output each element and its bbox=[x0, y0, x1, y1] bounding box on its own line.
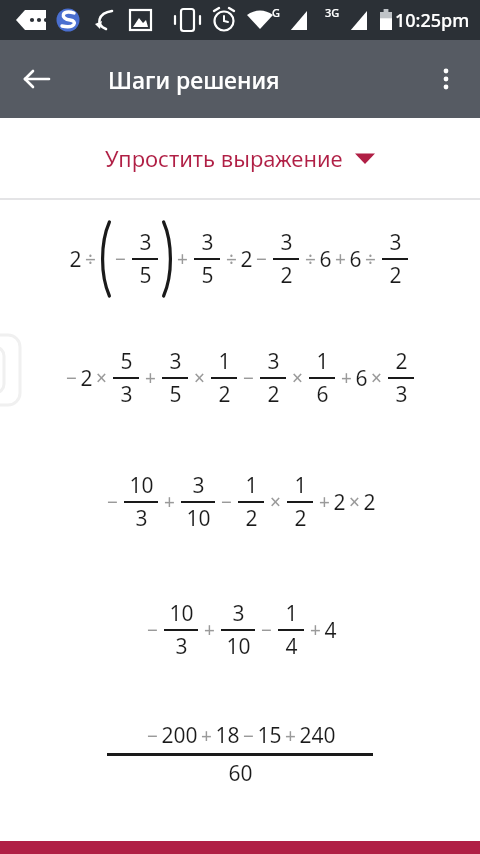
staticText: 3 bbox=[139, 228, 152, 257]
button[interactable]: Назад bbox=[10, 53, 62, 105]
staticText: 2 bbox=[363, 488, 376, 517]
staticText: 1 bbox=[245, 471, 258, 500]
staticText: 2 bbox=[80, 364, 93, 393]
staticText: 3G bbox=[325, 5, 340, 20]
staticText: 2 bbox=[267, 380, 280, 409]
staticText: − bbox=[107, 489, 118, 515]
staticText: G bbox=[272, 5, 280, 20]
staticText: × bbox=[349, 489, 360, 515]
staticText: × bbox=[194, 365, 205, 391]
staticText: 3 bbox=[267, 347, 280, 376]
staticText: + bbox=[145, 365, 156, 391]
staticText: + bbox=[201, 723, 212, 749]
staticText: × bbox=[270, 489, 281, 515]
staticText: + bbox=[341, 365, 352, 391]
staticText: 200 bbox=[161, 721, 198, 750]
staticText: 3 bbox=[135, 504, 148, 533]
staticText: 2 bbox=[245, 504, 258, 533]
staticText: 3 bbox=[232, 599, 245, 628]
staticText: 3 bbox=[169, 347, 182, 376]
staticText: Шаги решения bbox=[108, 64, 280, 95]
button[interactable]: Ещё bbox=[420, 53, 472, 105]
staticText: + bbox=[310, 617, 321, 643]
staticText: 5 bbox=[201, 261, 214, 290]
staticText: 5 bbox=[120, 347, 133, 376]
staticText: Упростить выражение bbox=[105, 143, 343, 173]
staticText: × bbox=[371, 365, 382, 391]
staticText: 2 bbox=[333, 488, 346, 517]
staticText: − bbox=[261, 617, 272, 643]
staticText: 4 bbox=[285, 632, 298, 661]
staticText: + bbox=[319, 489, 330, 515]
staticText: 6 bbox=[316, 380, 329, 409]
staticText: 3 bbox=[192, 471, 205, 500]
staticText: 3 bbox=[389, 228, 402, 257]
staticText: − bbox=[66, 365, 77, 391]
staticText: − bbox=[221, 489, 232, 515]
staticText: 10 bbox=[226, 632, 251, 661]
staticText: 60 bbox=[228, 759, 253, 788]
staticText: − bbox=[115, 246, 126, 272]
staticText: 2 bbox=[218, 380, 231, 409]
staticText: 10:25pm bbox=[395, 8, 470, 33]
staticText: 2 bbox=[389, 261, 402, 290]
staticText: 2 bbox=[240, 245, 253, 274]
staticText: 3 bbox=[201, 228, 214, 257]
staticText: + bbox=[335, 246, 346, 272]
staticText: 2 bbox=[294, 504, 307, 533]
staticText: 1 bbox=[294, 471, 307, 500]
staticText: ÷ bbox=[85, 246, 96, 272]
staticText: 1 bbox=[285, 599, 298, 628]
staticText: 240 bbox=[299, 721, 336, 750]
staticText: 3 bbox=[120, 380, 133, 409]
staticText: 2 bbox=[395, 347, 408, 376]
staticText: 10 bbox=[169, 599, 194, 628]
staticText: + bbox=[204, 617, 215, 643]
staticText: − bbox=[256, 246, 267, 272]
staticText: 4 bbox=[324, 616, 337, 645]
staticText: 10 bbox=[129, 471, 154, 500]
staticText: 15 bbox=[257, 721, 282, 750]
staticText: 2 bbox=[280, 261, 293, 290]
staticText: ÷ bbox=[305, 246, 316, 272]
staticText: + bbox=[285, 723, 296, 749]
button[interactable]: Упростить выражение bbox=[0, 118, 480, 198]
staticText: − bbox=[147, 617, 158, 643]
staticText: 3 bbox=[280, 228, 293, 257]
staticText: 3 bbox=[395, 380, 408, 409]
staticText: × bbox=[292, 365, 303, 391]
staticText: 3 bbox=[175, 632, 188, 661]
staticText: 6 bbox=[355, 364, 368, 393]
staticText: + bbox=[177, 246, 188, 272]
staticText: − bbox=[243, 365, 254, 391]
staticText: ÷ bbox=[365, 246, 376, 272]
staticText: 6 bbox=[349, 245, 362, 274]
staticText: 18 bbox=[215, 721, 240, 750]
staticText: 10 bbox=[186, 504, 211, 533]
staticText: ÷ bbox=[226, 246, 237, 272]
staticText: 1 bbox=[218, 347, 231, 376]
staticText: + bbox=[164, 489, 175, 515]
staticText: 5 bbox=[169, 380, 182, 409]
staticText: − bbox=[243, 723, 254, 749]
staticText: 2 bbox=[69, 245, 82, 274]
staticText: − bbox=[147, 723, 158, 749]
staticText: 5 bbox=[139, 261, 152, 290]
staticText: × bbox=[96, 365, 107, 391]
staticText: 1 bbox=[316, 347, 329, 376]
staticText: 6 bbox=[319, 245, 332, 274]
